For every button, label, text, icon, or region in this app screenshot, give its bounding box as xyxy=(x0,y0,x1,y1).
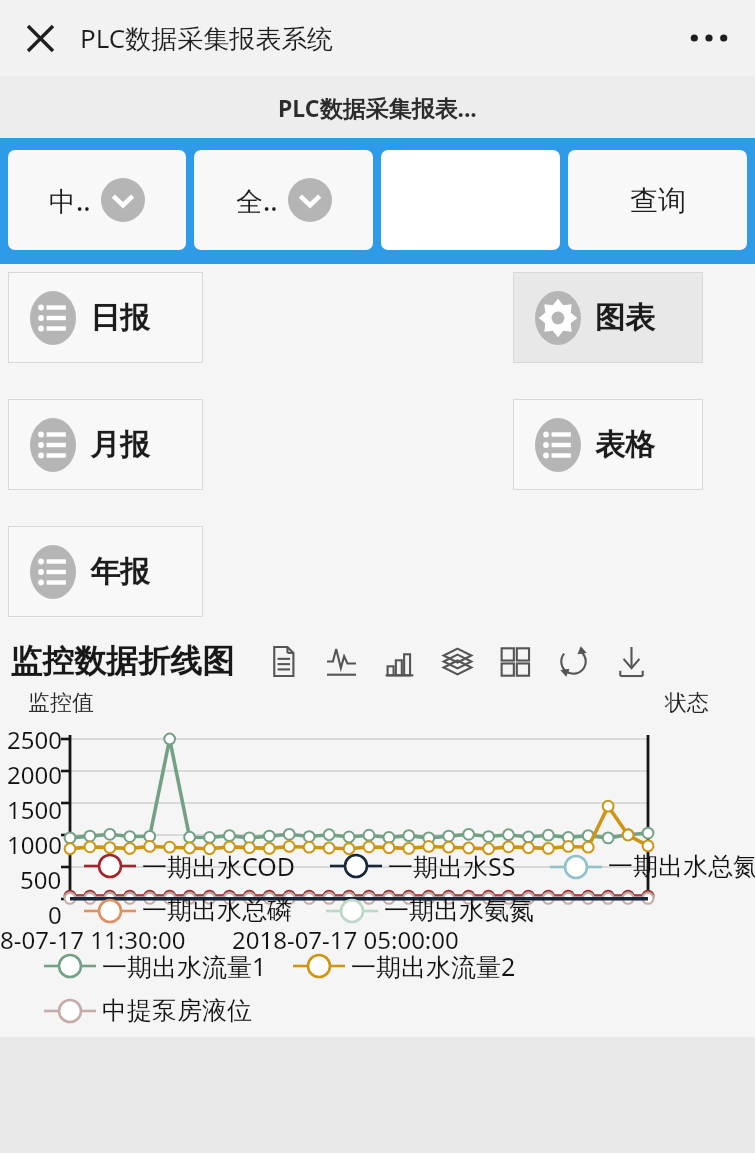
button[interactable]: 中.. xyxy=(8,150,186,250)
staticText: 0 xyxy=(48,898,62,931)
staticText: 一期出水总磷 xyxy=(142,895,292,926)
staticText: 监控值 xyxy=(28,689,94,717)
staticText: 2018-07-17 05:00:00 xyxy=(232,923,459,956)
button[interactable]: Grid view xyxy=(486,633,544,689)
button[interactable]: 一期出水总氮 xyxy=(550,851,755,882)
staticText: 月报 xyxy=(90,426,150,464)
button[interactable]: 一期出水流量1 xyxy=(44,949,267,983)
button[interactable]: 月报 xyxy=(8,399,203,490)
staticText: 2000 xyxy=(7,758,62,791)
button[interactable]: 一期出水总磷 xyxy=(84,895,292,926)
staticText: 日报 xyxy=(90,299,150,337)
staticText: 8-07-17 11:30:00 xyxy=(0,923,186,956)
staticText: 1000 xyxy=(7,828,62,861)
button[interactable]: Refresh xyxy=(544,633,602,689)
button[interactable]: 日报 xyxy=(8,272,203,363)
staticText: 一期出水SS xyxy=(388,849,516,883)
staticText: 500 xyxy=(20,863,62,896)
button[interactable]: 中提泵房液位 xyxy=(44,995,252,1026)
button[interactable]: Close xyxy=(16,14,64,62)
staticText: 2500 xyxy=(7,723,62,756)
button[interactable]: More options xyxy=(679,8,739,68)
staticText: 表格 xyxy=(595,426,655,464)
button[interactable]: 图表 xyxy=(513,272,703,363)
staticText: 全.. xyxy=(236,182,278,219)
staticText: 一期出水COD xyxy=(142,849,296,883)
button[interactable]: 表格 xyxy=(513,399,703,490)
button[interactable]: 一期出水COD xyxy=(84,849,296,883)
button[interactable]: 年报 xyxy=(8,526,203,617)
button[interactable]: 一期出水氨氮 xyxy=(326,895,534,926)
staticText: 年报 xyxy=(90,553,150,591)
staticText: 一期出水总氮 xyxy=(608,851,755,882)
button[interactable]: 查询 xyxy=(568,150,747,250)
staticText: 一期出水流量2 xyxy=(351,949,516,983)
staticText: 图表 xyxy=(595,299,655,337)
button[interactable]: 一期出水SS xyxy=(330,849,516,883)
staticText: 一期出水氨氮 xyxy=(384,895,534,926)
button[interactable]: 一期出水流量2 xyxy=(293,949,516,983)
button[interactable]: 全.. xyxy=(194,150,373,250)
staticText: PLC数据采集报表系统 xyxy=(80,20,334,56)
staticText: 状态 xyxy=(665,689,709,717)
button[interactable]: Document xyxy=(254,633,312,689)
button[interactable]: Date range input xyxy=(381,150,560,250)
staticText: 1500 xyxy=(7,793,62,826)
button[interactable]: Line chart xyxy=(312,633,370,689)
staticText: 监控数据折线图 xyxy=(10,641,234,681)
staticText: PLC数据采集报表... xyxy=(278,92,477,123)
button[interactable]: Download xyxy=(602,633,660,689)
staticText: 中提泵房液位 xyxy=(102,995,252,1026)
button[interactable]: Layers xyxy=(428,633,486,689)
button[interactable]: Bar chart xyxy=(370,633,428,689)
staticText: 一期出水流量1 xyxy=(102,949,267,983)
staticText: 中.. xyxy=(49,182,91,219)
staticText: 查询 xyxy=(630,183,686,218)
